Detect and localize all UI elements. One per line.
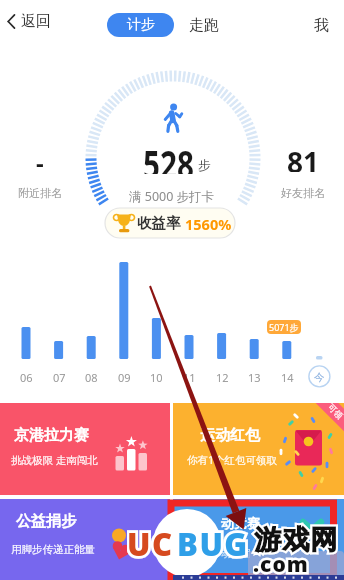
staticText: BUG (177, 523, 249, 561)
staticText: 5071步 (269, 321, 299, 333)
staticText: 公益捐步 (16, 512, 76, 531)
staticText: 用脚步传递正能量 (11, 543, 95, 556)
button[interactable]: 公益捐步 (0, 499, 170, 580)
staticText: .com (253, 550, 309, 575)
staticText: 走跑 (189, 16, 219, 35)
staticText: 528 (143, 137, 194, 174)
button[interactable]: 我 (303, 13, 339, 37)
staticText: 07 (53, 370, 66, 384)
staticText: 步 (198, 157, 211, 173)
button[interactable]: 运动红包 (173, 403, 344, 495)
staticText: 游戏网 (254, 523, 338, 557)
staticText: 游戏网 (254, 523, 338, 557)
staticText: 09 (118, 370, 131, 384)
staticText: 12 (216, 370, 229, 384)
staticText: 08 (85, 370, 98, 384)
staticText: 满 5000 步打卡 (129, 188, 215, 205)
staticText: 11 (183, 370, 196, 384)
button[interactable]: 计步 (107, 13, 174, 37)
staticText: 运动红包 (200, 426, 260, 445)
staticText: UC (127, 523, 174, 561)
staticText: 13 (248, 370, 261, 384)
button[interactable]: 京港拉力赛 (0, 403, 170, 495)
staticText: 可领 (325, 403, 344, 422)
staticText: 我 (314, 16, 329, 35)
staticText: 动员团 (221, 547, 251, 560)
staticText: UC (127, 523, 174, 561)
staticText: 你有1个红包可领取 (187, 453, 278, 467)
button[interactable] (105, 208, 235, 238)
staticText: BUG (177, 523, 249, 561)
staticText: 好友排名 (281, 186, 325, 200)
staticText: 京港拉力赛 (14, 426, 89, 445)
button[interactable] (0, 6, 62, 38)
staticText: 81 (287, 143, 320, 172)
staticText: 计步 (127, 16, 155, 34)
staticText: 今 (314, 371, 325, 384)
button[interactable]: 动竞赛 (173, 499, 344, 580)
staticText: 返回 (21, 12, 51, 31)
staticText: 14 (281, 370, 294, 384)
staticText: - (36, 146, 44, 171)
staticText: 10 (150, 370, 163, 384)
staticText: 附近排名 (18, 186, 62, 200)
staticText: .com (253, 550, 309, 575)
staticText: 动竞赛 (221, 515, 260, 531)
staticText: 06 (20, 370, 33, 384)
staticText: 挑战极限 走南闯北 (11, 453, 98, 467)
staticText: 收益率 (137, 214, 181, 232)
staticText: 1560% (185, 214, 232, 232)
button[interactable]: 走跑 (184, 13, 224, 37)
